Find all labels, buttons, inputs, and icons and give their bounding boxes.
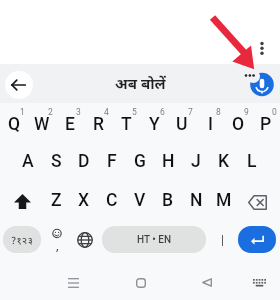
button[interactable]: E	[56, 106, 84, 142]
staticText: S	[51, 151, 62, 172]
staticText: X	[78, 190, 90, 211]
button[interactable]: J	[182, 144, 210, 179]
staticText: U	[176, 114, 188, 135]
staticText: H	[162, 151, 175, 172]
button[interactable]: Q	[0, 106, 28, 142]
button[interactable]: D	[70, 144, 98, 179]
staticText: G	[134, 151, 146, 172]
staticText: ?१२३	[11, 233, 33, 247]
button[interactable]: P	[252, 106, 280, 142]
staticText: |	[221, 233, 224, 247]
staticText: L	[247, 151, 257, 172]
button[interactable]: |	[208, 226, 236, 253]
button[interactable]: ?१२३	[3, 226, 41, 253]
button[interactable]: V	[126, 183, 154, 218]
button[interactable]: Home	[125, 270, 156, 295]
staticText: 5	[132, 107, 137, 117]
button[interactable]: Shift	[6, 184, 38, 219]
button[interactable]: U	[168, 106, 196, 142]
button[interactable]: R	[84, 106, 112, 142]
button[interactable]: A	[14, 144, 42, 179]
button[interactable]: H	[154, 144, 182, 179]
staticText: M	[216, 190, 232, 211]
staticText: 6	[160, 107, 165, 117]
button[interactable]: K	[210, 144, 238, 179]
staticText: 3	[76, 107, 81, 117]
button[interactable]: Z	[42, 183, 70, 218]
staticText: T	[121, 114, 132, 135]
staticText: N	[190, 190, 203, 211]
button[interactable]: Enter	[238, 226, 276, 253]
staticText: 4	[104, 107, 109, 117]
staticText: 1	[20, 107, 25, 117]
button[interactable]: W	[28, 106, 56, 142]
button[interactable]: M	[210, 183, 238, 218]
staticText: O	[232, 114, 245, 135]
staticText: R	[93, 114, 104, 135]
button[interactable]: C	[98, 183, 126, 218]
button[interactable]: More options	[254, 36, 270, 60]
staticText: Q	[8, 114, 21, 135]
button[interactable]: Back	[5, 71, 33, 99]
staticText: K	[218, 151, 230, 172]
button[interactable]: S	[42, 144, 70, 179]
staticText: Z	[51, 190, 62, 211]
button[interactable]: O	[224, 106, 252, 142]
button[interactable]: N	[182, 183, 210, 218]
button[interactable]: F	[98, 144, 126, 179]
staticText: J	[191, 151, 201, 172]
button[interactable]: Switch keyboard	[244, 270, 275, 295]
staticText: W	[34, 114, 50, 135]
button[interactable]: Back	[191, 270, 222, 295]
staticText: C	[106, 190, 118, 211]
staticText: 8	[216, 107, 221, 117]
staticText: F	[107, 151, 117, 172]
staticText: E	[65, 114, 75, 135]
button[interactable]: Emoji	[43, 226, 71, 253]
staticText: अब बोलें	[115, 73, 166, 93]
button[interactable]: Recent apps	[58, 270, 89, 295]
staticText: 2	[48, 107, 53, 117]
button[interactable]: I	[196, 106, 224, 142]
staticText: HT • EN	[137, 234, 171, 246]
button[interactable]: X	[70, 183, 98, 218]
button[interactable]: T	[112, 106, 140, 142]
button[interactable]: B	[154, 183, 182, 218]
button[interactable]: Change language	[71, 226, 99, 253]
staticText: I	[208, 114, 213, 135]
staticText: A	[22, 151, 34, 172]
button[interactable]: Y	[140, 106, 168, 142]
staticText: 9	[244, 107, 249, 117]
staticText: V	[134, 190, 146, 211]
button[interactable]: Backspace	[241, 185, 273, 220]
staticText: 7	[188, 107, 193, 117]
button[interactable]: G	[126, 144, 154, 179]
staticText: 0	[272, 107, 277, 117]
button[interactable]: HT • EN	[102, 226, 206, 253]
button[interactable]: L	[238, 144, 266, 179]
staticText: B	[162, 190, 174, 211]
staticText: D	[78, 151, 90, 172]
button[interactable]: Voice input	[243, 70, 275, 102]
staticText: P	[260, 114, 272, 135]
staticText: Y	[149, 114, 160, 135]
staticText: ,	[56, 238, 59, 253]
